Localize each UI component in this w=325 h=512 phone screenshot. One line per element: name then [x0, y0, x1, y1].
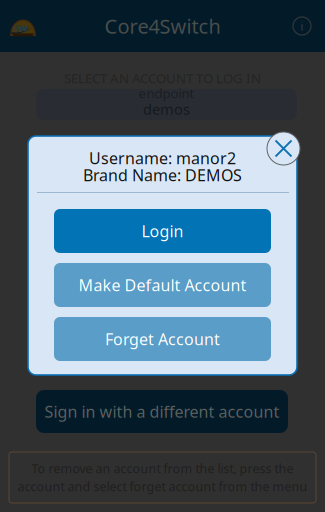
staticText: Brand Name: DEMOS — [83, 164, 242, 186]
staticText: endpoint — [138, 84, 194, 102]
staticText: Forget Account — [105, 328, 220, 350]
staticText: Login — [141, 220, 183, 242]
button[interactable]: About — [293, 17, 311, 35]
button[interactable]: Login — [54, 209, 271, 253]
staticText: SELECT AN ACCOUNT TO LOG IN — [64, 69, 261, 87]
staticText: Sign in with a different account — [44, 401, 279, 422]
staticText: Make Default Account — [78, 274, 246, 296]
button[interactable]: Core4Switch home — [10, 17, 36, 36]
button[interactable]: Close — [267, 132, 300, 165]
button[interactable]: Make Default Account — [54, 263, 271, 307]
staticText: Core4Switch — [104, 13, 220, 39]
button[interactable]: endpoint — [36, 89, 297, 120]
staticText: SW — [14, 22, 28, 34]
staticText: demos — [143, 99, 190, 119]
staticText: account and select forget account from t… — [17, 478, 307, 495]
staticText: Username: manor2 — [89, 147, 236, 169]
staticText: To remove an account from the list, pres… — [31, 460, 293, 477]
button[interactable]: Forget Account — [54, 317, 271, 361]
button[interactable]: Sign in with a different account — [36, 390, 288, 433]
